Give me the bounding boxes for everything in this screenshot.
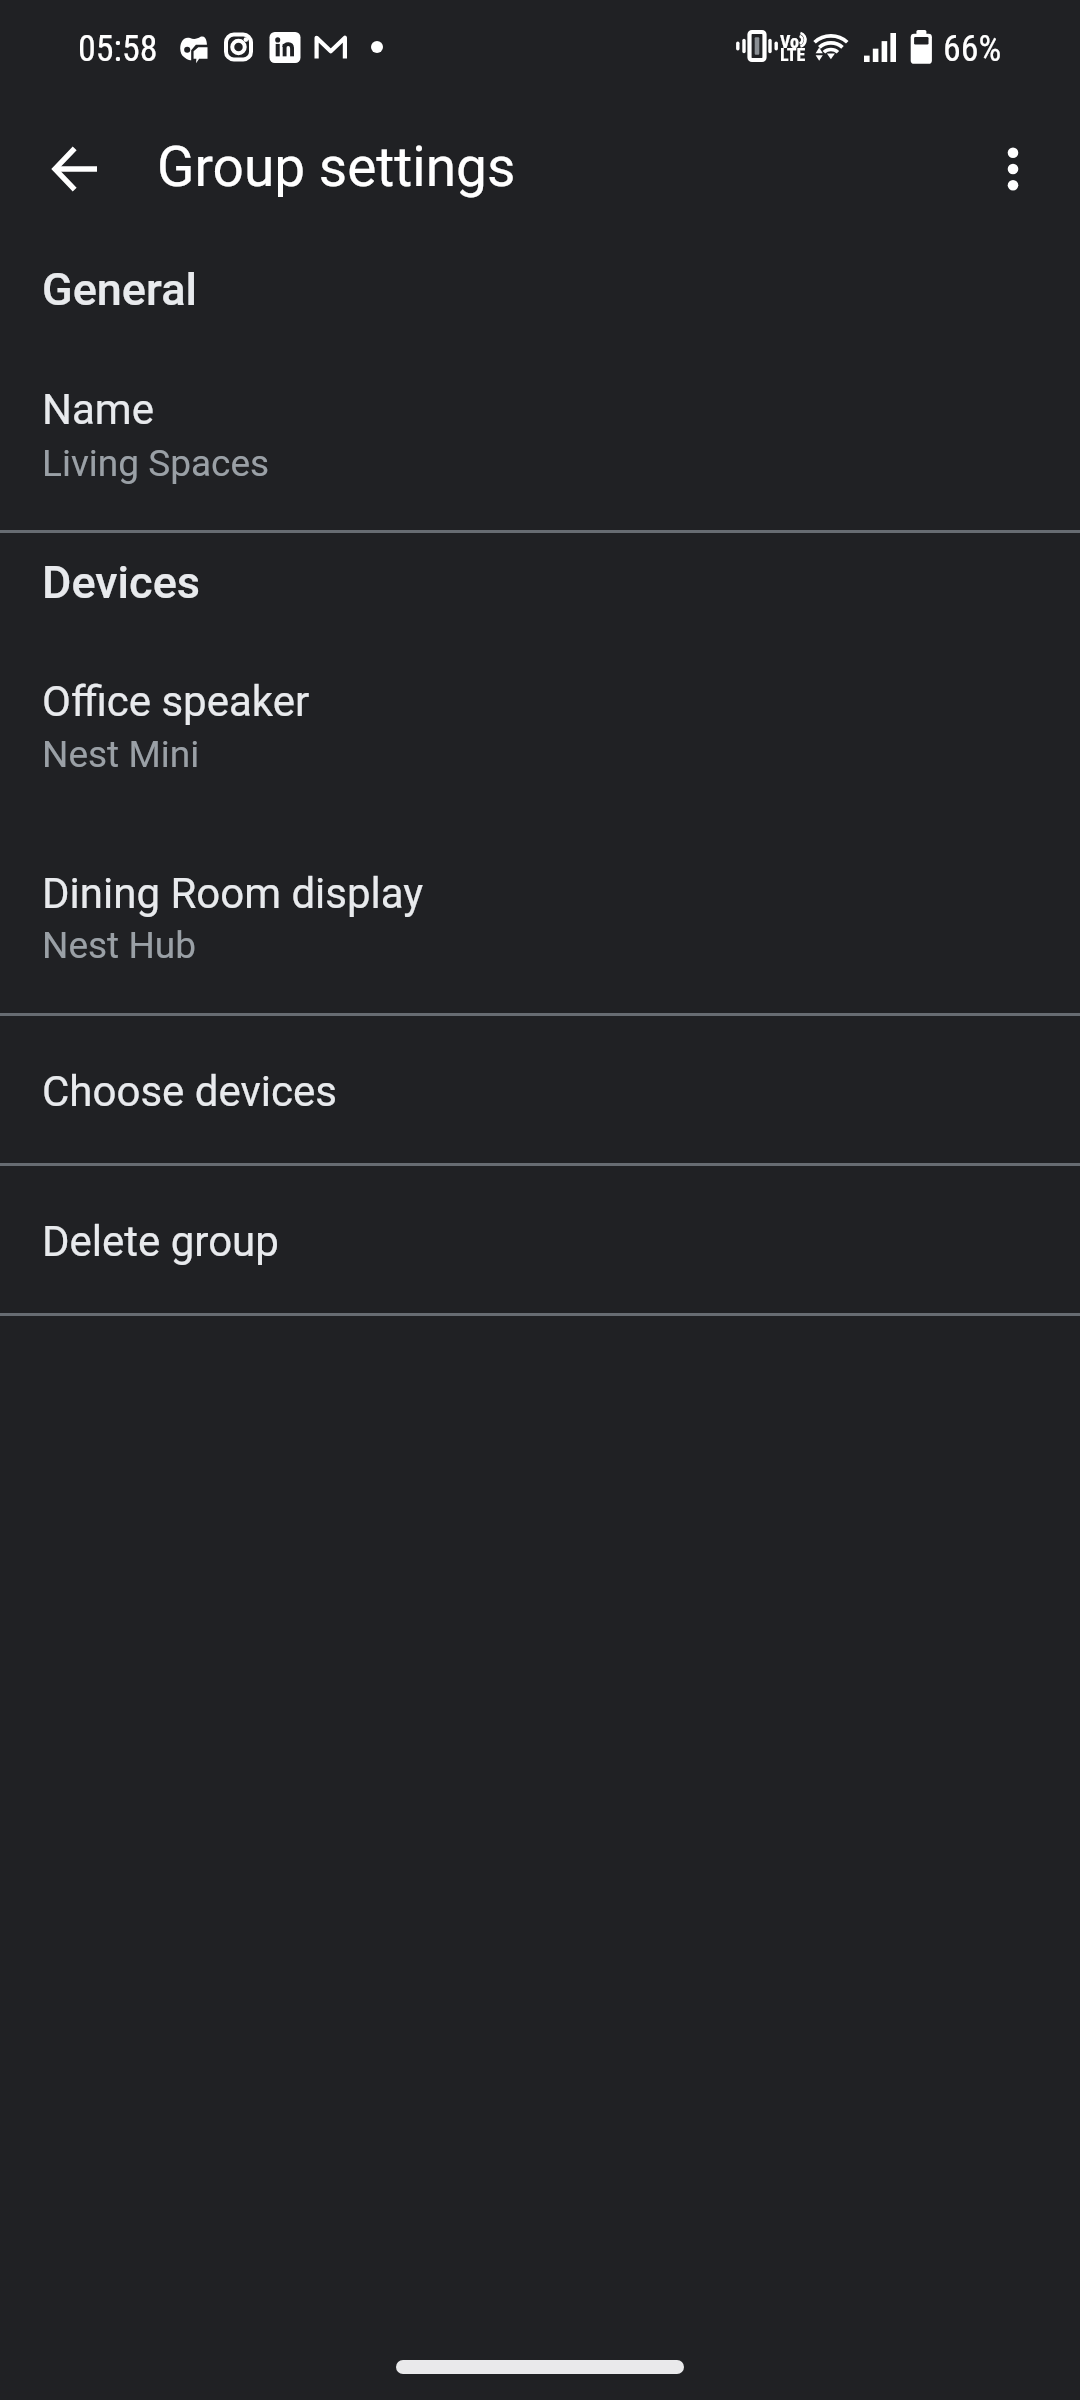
button[interactable]: Dining Room display	[0, 830, 1080, 1005]
staticText: General	[42, 263, 198, 316]
button[interactable]: Back	[31, 124, 121, 214]
staticText: Nest Mini	[42, 733, 200, 776]
staticText: 66%	[943, 28, 1002, 70]
button[interactable]: Name	[0, 346, 1080, 521]
staticText: Devices	[42, 556, 201, 609]
button[interactable]: More options	[968, 124, 1058, 214]
staticText: Living Spaces	[42, 442, 270, 485]
staticText: Group settings	[157, 135, 516, 199]
staticText: Choose devices	[42, 1067, 337, 1116]
button[interactable]: Delete group	[0, 1166, 1080, 1314]
staticText: Nest Hub	[42, 924, 196, 967]
staticText: Dining Room display	[42, 869, 424, 918]
staticText: Name	[42, 385, 154, 434]
staticText: Office speaker	[42, 677, 310, 726]
staticText: Delete group	[42, 1217, 279, 1266]
staticText: 05:58	[78, 28, 158, 70]
staticText: LTE	[780, 44, 806, 65]
button[interactable]: Choose devices	[0, 1016, 1080, 1164]
staticText: Vo	[780, 31, 799, 52]
button[interactable]: Office speaker	[0, 638, 1080, 813]
